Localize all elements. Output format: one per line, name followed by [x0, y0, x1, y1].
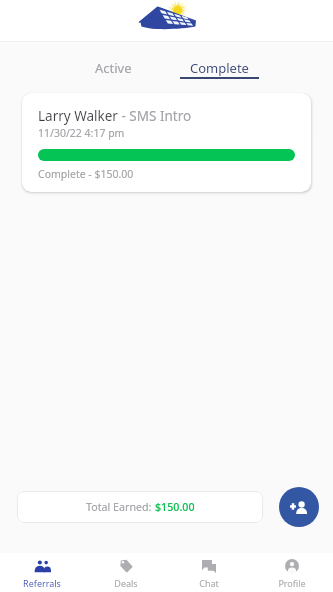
button[interactable]: Active	[61, 42, 166, 93]
staticText: Larry Walker	[38, 107, 118, 125]
staticText: $150.00	[155, 500, 195, 515]
staticText: Chat	[199, 577, 219, 589]
button[interactable]: Larry Walker	[22, 93, 311, 192]
staticText: Deals	[114, 577, 138, 589]
staticText: - SMS Intro	[118, 107, 192, 125]
button[interactable]: Profile	[250, 553, 333, 592]
button[interactable]: Complete	[166, 42, 272, 93]
staticText: Profile	[278, 577, 306, 589]
staticText: Referrals	[23, 577, 61, 589]
staticText: Complete	[190, 59, 249, 77]
button[interactable]: Deals	[84, 553, 167, 592]
button[interactable]: Chat	[167, 553, 250, 592]
staticText: Complete - $150.00	[38, 167, 134, 181]
button[interactable]: Referrals	[0, 553, 84, 592]
staticText: 11/30/22 4:17 pm	[38, 126, 125, 140]
staticText: Total Earned:	[86, 500, 155, 515]
button[interactable]: Total Earned:	[17, 491, 263, 523]
button[interactable]: Add referral	[279, 487, 319, 527]
staticText: Active	[95, 59, 132, 77]
